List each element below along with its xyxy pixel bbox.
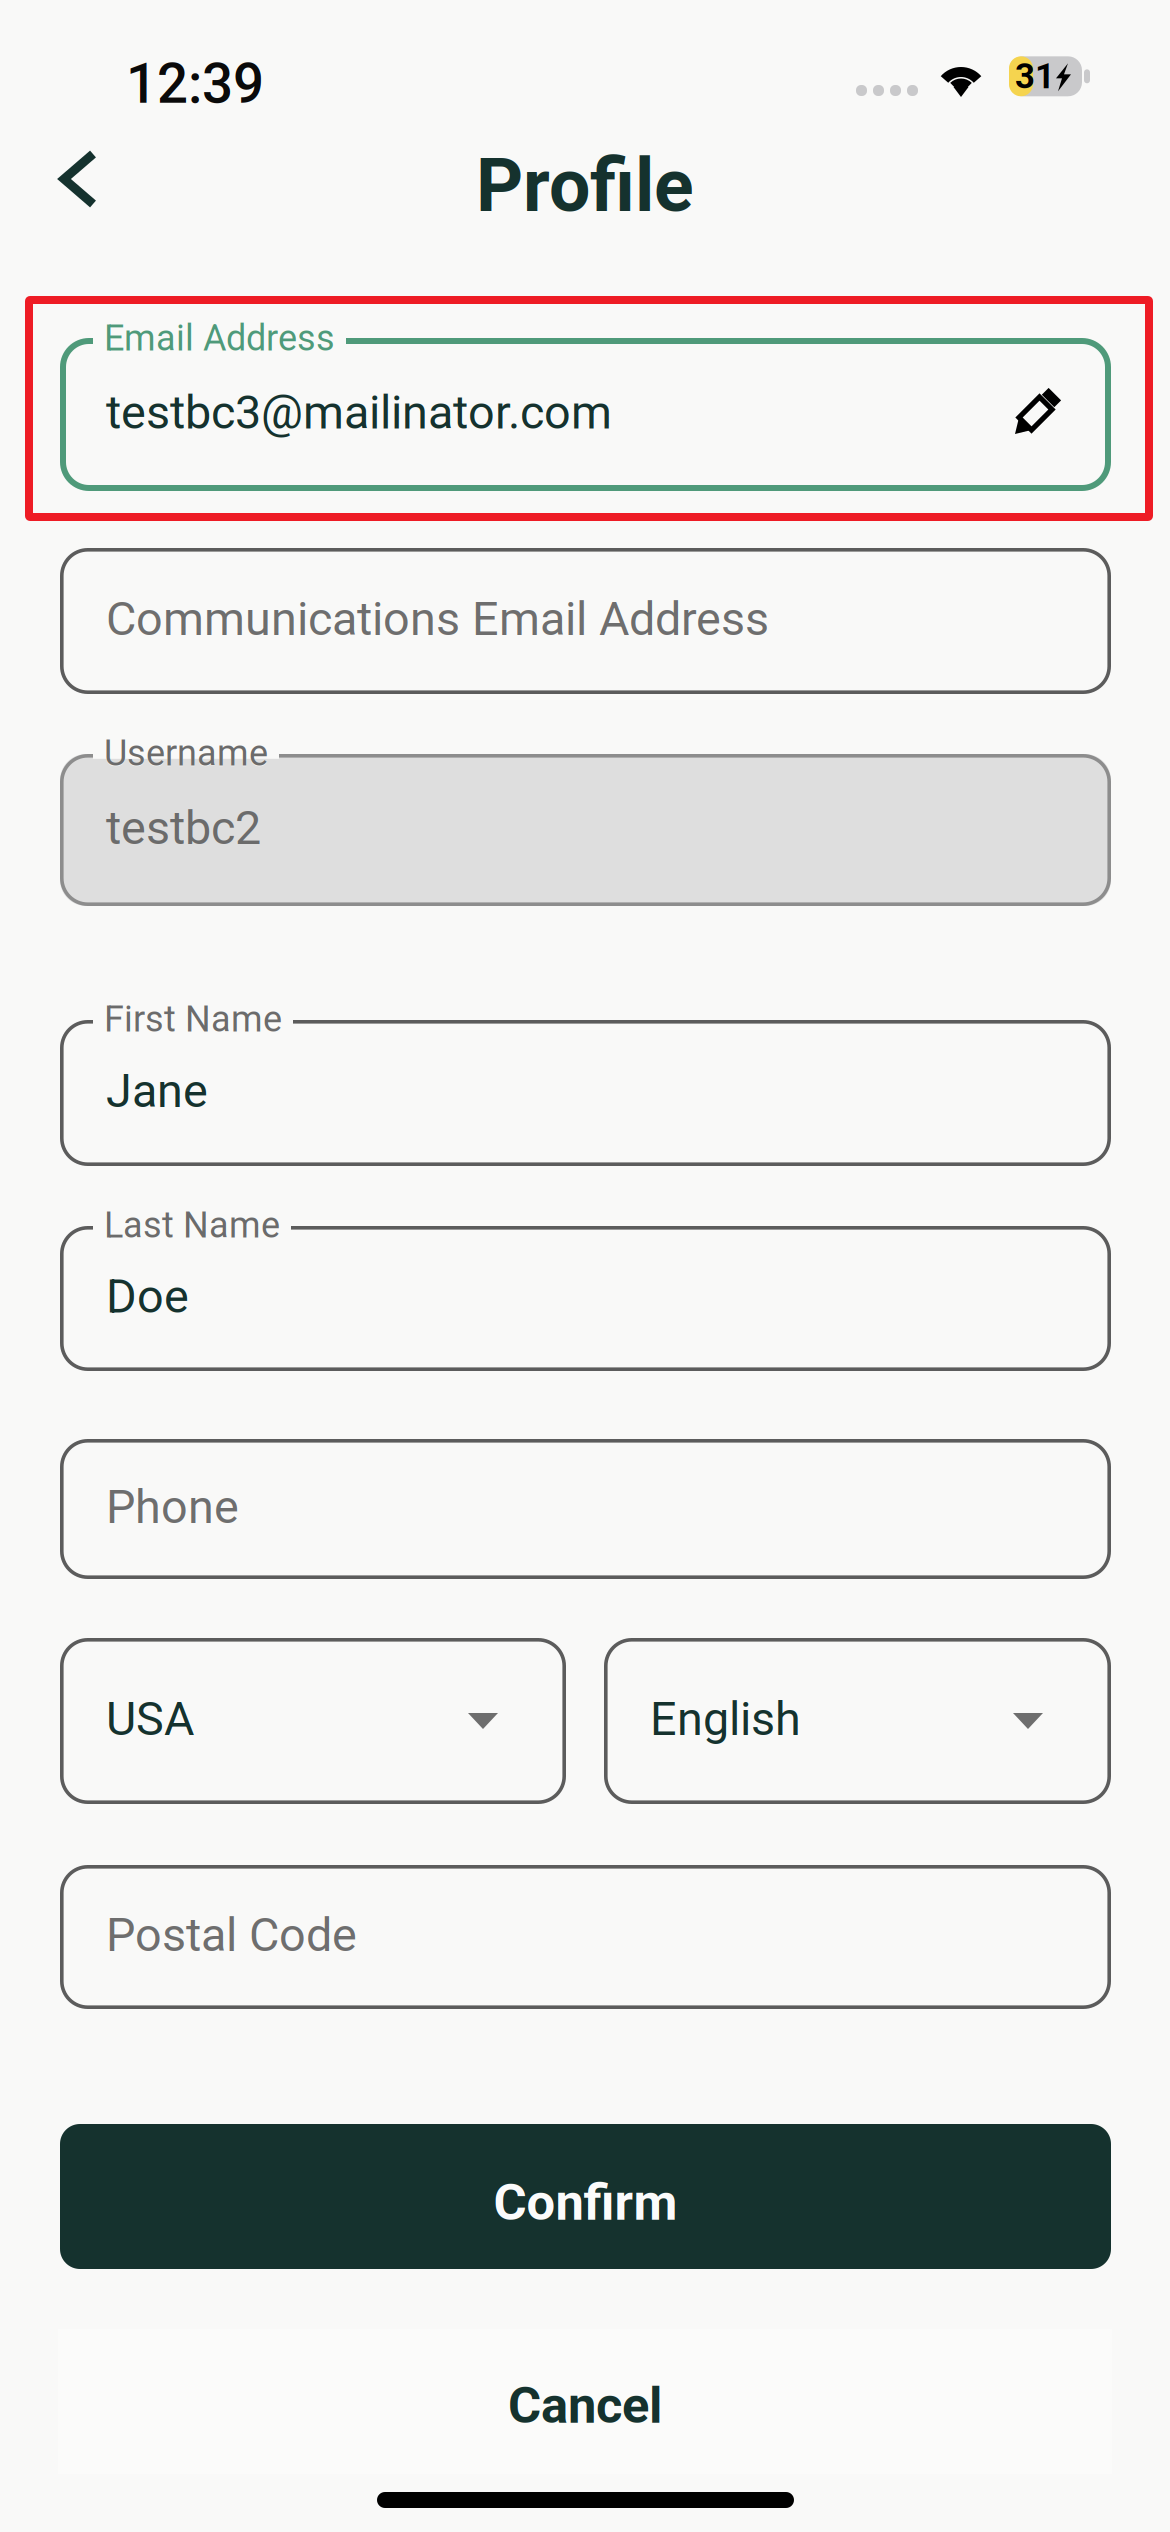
staticText: Jane — [106, 1064, 208, 1118]
button[interactable]: Language — [604, 1638, 1111, 1804]
button[interactable]: Back — [0, 140, 136, 232]
button[interactable]: Communications Email Address — [60, 548, 1111, 694]
staticText: USA — [106, 1692, 194, 1746]
button[interactable]: Cancel — [58, 2329, 1112, 2474]
staticText: Email Address — [104, 317, 335, 359]
button[interactable]: Phone — [60, 1439, 1111, 1579]
staticText: Last Name — [104, 1205, 280, 1247]
staticText: Username — [104, 733, 268, 775]
staticText: Cancel — [508, 2376, 662, 2435]
staticText: Postal Code — [106, 1908, 357, 1962]
staticText: Last Name — [104, 1204, 280, 1246]
staticText: Phone — [106, 1480, 239, 1534]
button[interactable]: Username — [60, 754, 1111, 906]
staticText: 12:39 — [126, 52, 264, 116]
button[interactable]: Last Name — [60, 1226, 1111, 1371]
button[interactable]: First Name — [60, 1020, 1111, 1166]
button[interactable]: Postal Code — [60, 1865, 1111, 2009]
staticText: Username — [104, 732, 268, 774]
button[interactable]: Confirm — [60, 2124, 1111, 2269]
staticText: Profile — [476, 143, 694, 229]
staticText: First Name — [104, 999, 282, 1041]
staticText: English — [650, 1692, 801, 1746]
staticText: First Name — [104, 998, 282, 1040]
button[interactable]: Email Address — [60, 338, 1111, 491]
button[interactable]: Country — [60, 1638, 566, 1804]
staticText: testbc3@mailinator.com — [106, 385, 612, 440]
staticText: Confirm — [493, 2173, 677, 2232]
staticText: Doe — [106, 1269, 189, 1324]
staticText: 31 — [1015, 56, 1055, 97]
staticText: testbc2 — [106, 801, 261, 855]
staticText: Email Address — [104, 317, 335, 359]
staticText: Communications Email Address — [106, 592, 769, 646]
